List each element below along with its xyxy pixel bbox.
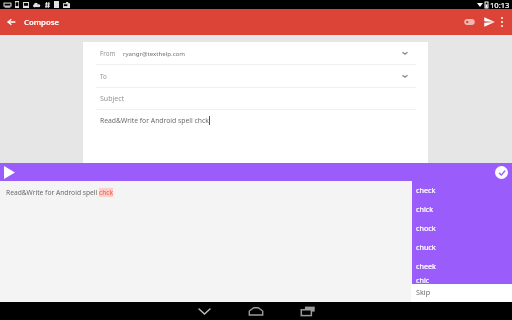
button[interactable]: Skip (411, 284, 512, 302)
button[interactable]: Play (1, 164, 17, 180)
staticText: chock (416, 223, 436, 233)
staticText: ryangr@texthelp.com (123, 49, 185, 57)
staticText: To (100, 72, 107, 80)
staticText: Compose (24, 17, 59, 28)
button[interactable]: Back (0, 9, 23, 35)
staticText: Skip (416, 287, 431, 297)
button[interactable]: cheek (412, 256, 512, 275)
button[interactable]: Back (178, 302, 230, 320)
staticText: From (100, 49, 116, 57)
button[interactable]: chock (412, 218, 512, 237)
button[interactable]: chic (412, 275, 512, 285)
staticText: cheek (416, 261, 436, 271)
button[interactable]: Send (479, 9, 500, 35)
button[interactable]: Attach file (461, 9, 478, 35)
button[interactable]: Accept suggestion (495, 166, 508, 179)
staticText: chick (416, 204, 434, 214)
staticText: Read&Write for Android spell chck (6, 188, 114, 197)
button[interactable]: Home (230, 302, 282, 320)
staticText: Subject (100, 94, 125, 104)
button[interactable]: Recent apps (282, 302, 334, 320)
staticText: chuck (416, 242, 436, 252)
button[interactable]: chick (412, 199, 512, 218)
staticText: Read&Write for Android spell chck (100, 116, 209, 125)
button[interactable]: check (412, 180, 512, 199)
staticText: chic (416, 275, 430, 285)
staticText: 10:13 (490, 0, 510, 9)
button[interactable]: chuck (412, 237, 512, 256)
staticText: check (416, 185, 436, 195)
button[interactable]: More options (493, 9, 510, 35)
